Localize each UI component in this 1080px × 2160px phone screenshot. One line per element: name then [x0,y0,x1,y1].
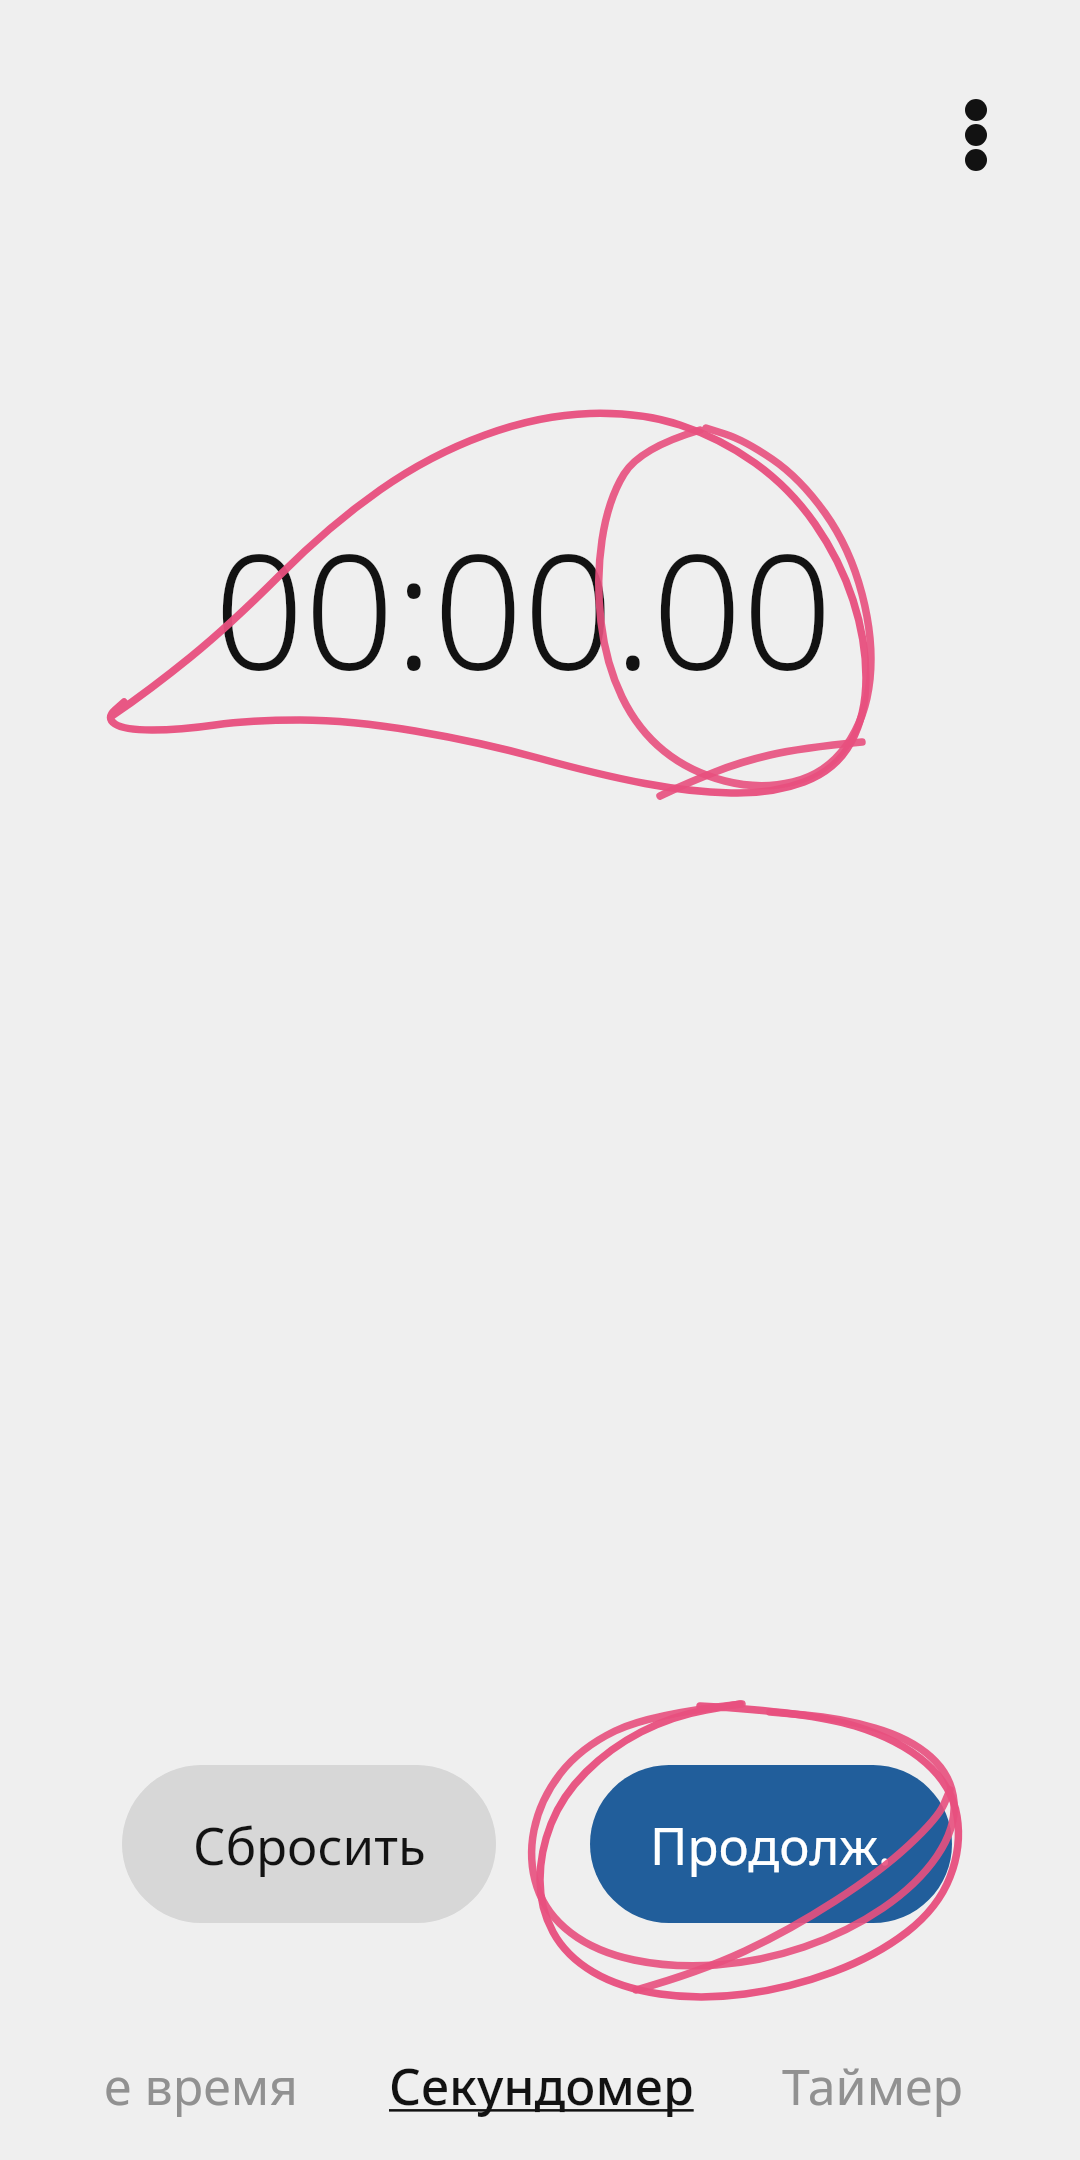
button[interactable]: More options [936,70,1016,190]
button[interactable]: Сбросить [122,1765,496,1923]
staticText: Таймер [782,2052,963,2120]
button[interactable]: е время [0,2030,320,2160]
staticText: Сбросить [193,1810,426,1879]
staticText: Продолж. [650,1810,892,1879]
staticText: Секундомер [389,2052,694,2120]
staticText: е время [104,2052,298,2120]
staticText: 00:00.00 [214,500,833,715]
button[interactable]: Секундомер [352,2030,730,2160]
button[interactable]: Таймер [760,2030,1020,2160]
button[interactable]: Продолж. [590,1765,952,1923]
